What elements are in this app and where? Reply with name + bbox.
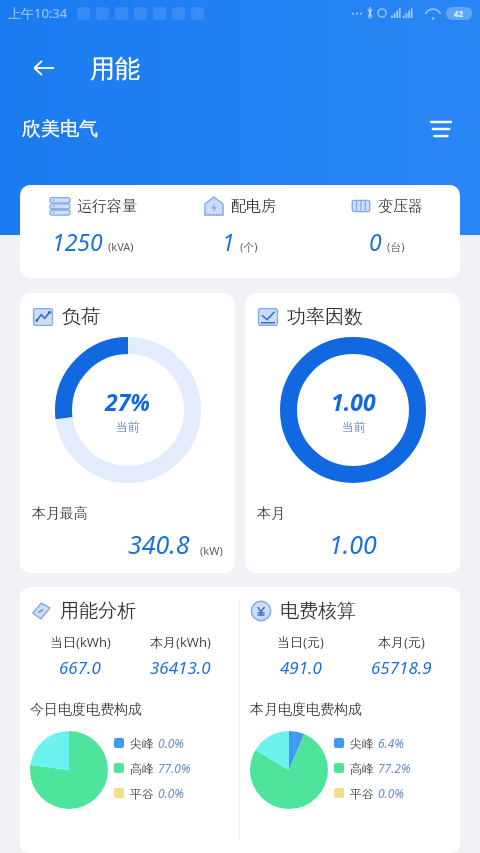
staticText: 667.0 [59, 656, 101, 679]
staticText: 电费核算 [280, 599, 356, 623]
staticText: 当日(kWh) [50, 633, 111, 651]
staticText: (kW) [200, 543, 223, 558]
staticText: 本月 [257, 505, 285, 523]
staticText: 当前 [342, 419, 366, 434]
staticText: 1.00 [329, 527, 377, 561]
staticText: 本月(元) [378, 633, 425, 651]
staticText: 高峰 [130, 761, 154, 776]
staticText: 27% [105, 386, 151, 417]
staticText: 运行容量 [77, 197, 137, 216]
button[interactable]: Menu [424, 112, 458, 146]
staticText: 0.0% [158, 735, 184, 751]
staticText: 340.8 [128, 527, 190, 561]
staticText: 65718.9 [371, 656, 432, 679]
staticText: 0 [369, 226, 382, 257]
staticText: 上午10:34 [8, 4, 68, 22]
staticText: (kVA) [108, 239, 134, 254]
staticText: 本月(kWh) [150, 633, 211, 651]
staticText: 负荷 [62, 305, 100, 329]
staticText: 0.0% [378, 785, 404, 801]
button[interactable]: 运行容量 [20, 185, 460, 278]
staticText: 用能 [90, 53, 140, 84]
staticText: (个) [240, 239, 258, 254]
staticText: 欣美电气 [22, 117, 98, 141]
staticText: 本月最高 [32, 505, 88, 523]
staticText: 变压器 [378, 197, 423, 216]
staticText: (台) [387, 239, 405, 254]
staticText: 本月电度电费构成 [250, 701, 362, 719]
button[interactable]: 功率因数 [245, 293, 460, 573]
staticText: 6.4% [378, 735, 404, 751]
staticText: 1 [222, 226, 235, 257]
staticText: 42 [454, 8, 464, 19]
staticText: 尖峰 [130, 736, 154, 751]
button[interactable]: Back [22, 46, 66, 90]
staticText: 尖峰 [350, 736, 374, 751]
staticText: 1250 [52, 226, 103, 257]
staticText: 今日电度电费构成 [30, 701, 142, 719]
staticText: 高峰 [350, 761, 374, 776]
staticText: 77.0% [158, 760, 191, 776]
staticText: 配电房 [231, 197, 276, 216]
staticText: 平谷 [130, 786, 154, 801]
staticText: 77.2% [378, 760, 411, 776]
staticText: 当前 [116, 419, 140, 434]
staticText: 功率因数 [287, 305, 363, 329]
button[interactable]: 负荷 [20, 293, 235, 573]
staticText: 平谷 [350, 786, 374, 801]
staticText: 1.00 [331, 386, 376, 417]
staticText: 0.0% [158, 785, 184, 801]
staticText: 36413.0 [150, 656, 211, 679]
staticText: 当日(元) [277, 633, 324, 651]
staticText: 491.0 [280, 656, 322, 679]
staticText: 用能分析 [60, 599, 136, 623]
